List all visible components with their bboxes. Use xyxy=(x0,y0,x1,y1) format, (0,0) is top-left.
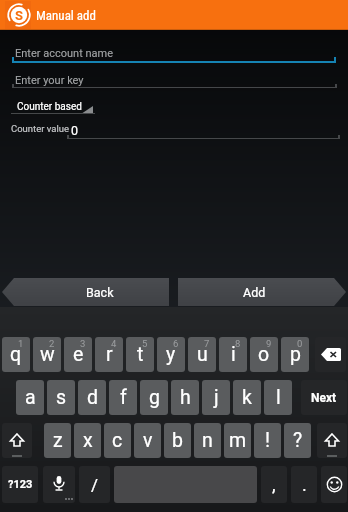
button[interactable]: f xyxy=(109,380,137,415)
button[interactable]: c xyxy=(104,423,131,458)
staticText: q xyxy=(10,343,22,366)
button[interactable]: z xyxy=(44,423,71,458)
button[interactable] xyxy=(43,466,75,503)
button[interactable] xyxy=(2,423,32,458)
button[interactable] xyxy=(315,337,346,372)
staticText: 7 xyxy=(204,338,210,349)
staticText: / xyxy=(91,475,99,495)
staticText: g xyxy=(149,386,160,409)
button[interactable]: k xyxy=(233,380,261,415)
button[interactable]: j xyxy=(202,380,230,415)
button[interactable]: m xyxy=(224,423,251,458)
button[interactable]: ? xyxy=(284,423,311,458)
staticText: Enter your key xyxy=(15,74,84,87)
button[interactable]: ! xyxy=(254,423,281,458)
button[interactable]: a xyxy=(16,380,44,415)
staticText: l xyxy=(276,386,281,409)
button[interactable] xyxy=(317,423,347,458)
staticText: 6 xyxy=(173,338,179,349)
button[interactable] xyxy=(12,66,336,88)
staticText: 5 xyxy=(142,338,148,349)
staticText: z xyxy=(53,429,63,452)
button[interactable] xyxy=(12,40,336,63)
staticText: i xyxy=(231,343,236,366)
staticText: 4 xyxy=(111,338,117,349)
button[interactable]: Next xyxy=(301,380,347,415)
staticText: u xyxy=(197,343,208,366)
staticText: a xyxy=(25,386,36,409)
button[interactable]: e xyxy=(64,337,92,372)
staticText: y xyxy=(166,343,176,366)
button[interactable]: q xyxy=(2,337,30,372)
button[interactable]: d xyxy=(78,380,106,415)
button[interactable] xyxy=(11,94,105,115)
staticText: 3 xyxy=(80,338,86,349)
staticText: S xyxy=(15,8,23,23)
staticText: Manual add xyxy=(36,8,96,23)
staticText: b xyxy=(172,429,183,452)
staticText: w xyxy=(40,343,55,366)
staticText: k xyxy=(242,386,252,409)
staticText: n xyxy=(202,429,213,452)
staticText: 2 xyxy=(49,338,55,349)
staticText: Counter based xyxy=(17,101,82,113)
button[interactable]: s xyxy=(47,380,75,415)
staticText: 9 xyxy=(266,338,272,349)
button[interactable]: v xyxy=(134,423,161,458)
button[interactable] xyxy=(321,466,347,503)
staticText: j xyxy=(214,386,219,409)
button[interactable]: Back xyxy=(2,278,169,306)
staticText: v xyxy=(143,429,153,452)
staticText: 0 xyxy=(297,338,303,349)
staticText: t xyxy=(137,343,144,366)
button[interactable] xyxy=(67,122,339,140)
staticText: Back xyxy=(86,285,114,300)
button[interactable]: l xyxy=(264,380,292,415)
staticText: f xyxy=(120,386,127,409)
staticText: m xyxy=(229,429,247,452)
staticText: , xyxy=(272,474,276,495)
staticText: 1 xyxy=(18,338,24,349)
button[interactable]: x xyxy=(74,423,101,458)
staticText: ? xyxy=(293,429,303,452)
button[interactable]: n xyxy=(194,423,221,458)
staticText: p xyxy=(290,343,301,366)
button[interactable]: b xyxy=(164,423,191,458)
button[interactable]: . xyxy=(291,466,317,503)
staticText: . xyxy=(302,474,307,495)
staticText: o xyxy=(258,343,270,366)
button[interactable]: y xyxy=(157,337,185,372)
staticText: Next xyxy=(311,391,337,405)
staticText: ! xyxy=(265,429,271,452)
button[interactable]: , xyxy=(261,466,287,503)
staticText: Enter account name xyxy=(15,47,113,60)
button[interactable]: u xyxy=(188,337,216,372)
button[interactable]: ?123 xyxy=(2,466,38,503)
staticText: h xyxy=(180,386,191,409)
button[interactable]: Add xyxy=(178,278,346,306)
button[interactable]: g xyxy=(140,380,168,415)
staticText: c xyxy=(112,429,123,452)
staticText: r xyxy=(106,343,113,366)
staticText: ?123 xyxy=(8,478,33,491)
staticText: Add xyxy=(243,285,266,300)
staticText: Counter value xyxy=(11,123,70,134)
staticText: e xyxy=(73,343,84,366)
button[interactable]: p xyxy=(281,337,309,372)
button[interactable]: w xyxy=(33,337,61,372)
staticText: 8 xyxy=(235,338,241,349)
button[interactable]: / xyxy=(79,466,110,503)
staticText: x xyxy=(83,429,93,452)
staticText: 0 xyxy=(71,123,79,137)
button[interactable]: i xyxy=(219,337,247,372)
button[interactable]: t xyxy=(126,337,154,372)
button[interactable]: o xyxy=(250,337,278,372)
button[interactable]: r xyxy=(95,337,123,372)
button[interactable]: h xyxy=(171,380,199,415)
staticText: s xyxy=(56,386,67,409)
staticText: d xyxy=(87,386,98,409)
button[interactable]: S xyxy=(7,3,31,27)
